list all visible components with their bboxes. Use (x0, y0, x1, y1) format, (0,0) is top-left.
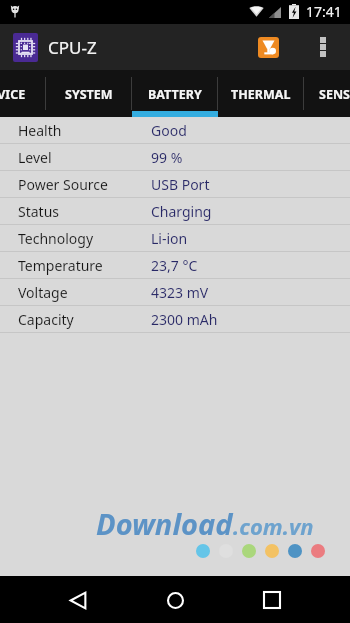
staticText: 4323 mV (151, 283, 209, 302)
button[interactable]: App icon (13, 33, 38, 62)
button[interactable]: Power Source (0, 171, 350, 197)
staticText: .com.vn (233, 511, 314, 541)
staticText: Power Source (18, 175, 108, 194)
staticText: BATTERY (148, 86, 202, 103)
staticText: Charging (151, 202, 212, 221)
staticText: Good (151, 121, 187, 140)
staticText: THERMAL (231, 86, 291, 103)
staticText: Capacity (18, 310, 74, 329)
button[interactable]: Home (153, 578, 197, 622)
staticText: CPU-Z (48, 36, 97, 59)
button[interactable]: Level (0, 144, 350, 170)
staticText: Level (18, 148, 52, 167)
button[interactable]: Back (56, 578, 100, 622)
button[interactable]: SENSORS (304, 70, 350, 117)
button[interactable]: Capacity (0, 306, 350, 332)
staticText: SENSORS (319, 86, 350, 103)
button[interactable]: Status (0, 198, 350, 224)
staticText: Li-ion (151, 229, 188, 248)
staticText: DEVICE (0, 86, 26, 103)
button[interactable]: BATTERY (132, 70, 218, 117)
staticText: 2300 mAh (151, 310, 218, 329)
staticText: Health (18, 121, 62, 140)
staticText: Download (96, 504, 233, 543)
staticText: USB Port (151, 175, 210, 194)
button[interactable]: SYSTEM (46, 70, 132, 117)
button[interactable]: Health (0, 117, 350, 143)
button[interactable]: Technology (0, 225, 350, 251)
staticText: 17:41 (306, 2, 342, 21)
staticText: Voltage (18, 283, 68, 302)
button[interactable]: DEVICE (0, 70, 46, 117)
button[interactable]: THERMAL (218, 70, 304, 117)
button[interactable]: Temperature (0, 252, 350, 278)
staticText: Technology (18, 229, 94, 248)
button[interactable]: More options (320, 31, 326, 63)
button[interactable]: Award (258, 37, 279, 58)
staticText: Temperature (18, 256, 103, 275)
button[interactable]: Voltage (0, 279, 350, 305)
staticText: SYSTEM (65, 86, 113, 103)
staticText: 23,7 °C (151, 256, 198, 275)
staticText: Status (18, 202, 60, 221)
staticText: 99 % (151, 148, 183, 167)
button[interactable]: Recents (250, 578, 294, 622)
